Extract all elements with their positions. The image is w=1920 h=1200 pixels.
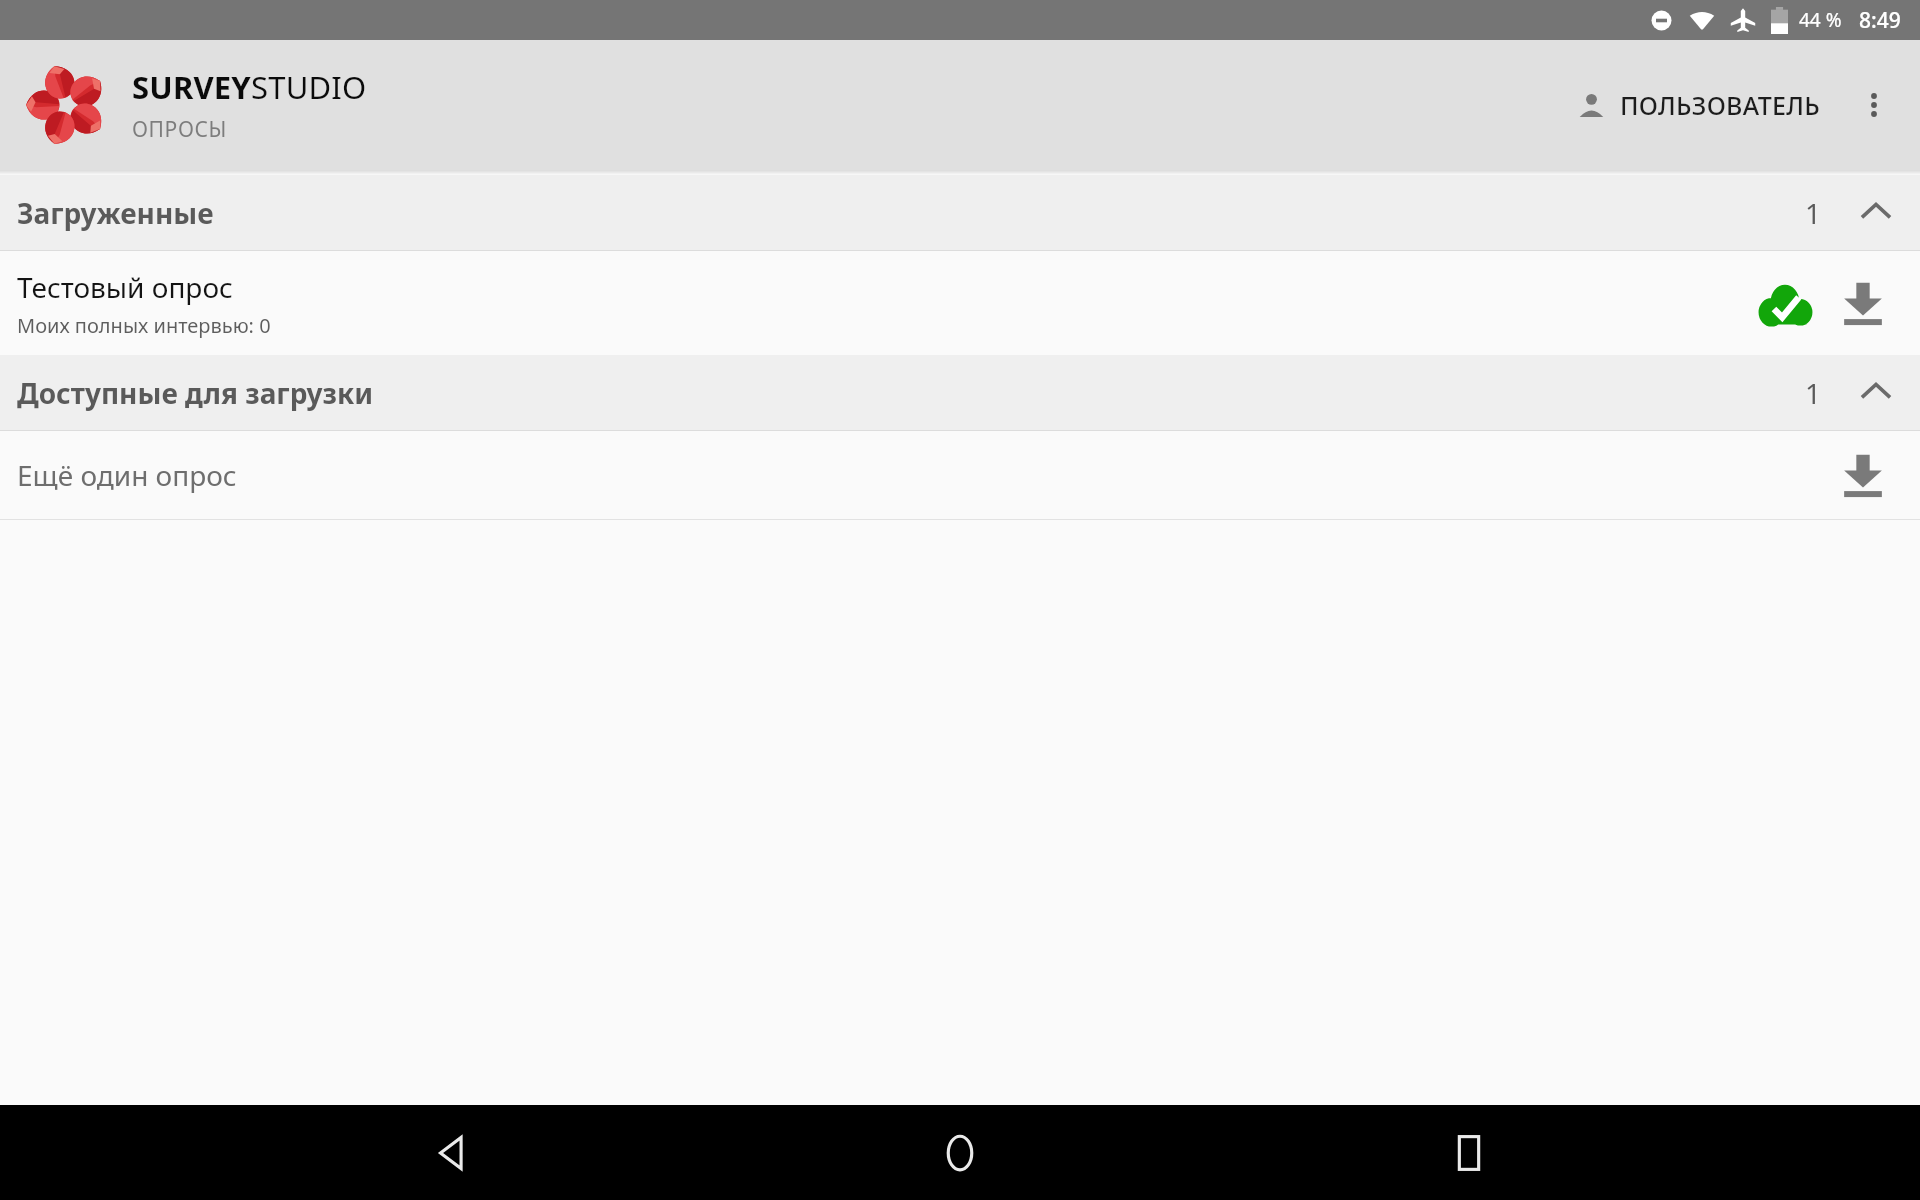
button[interactable]: Back — [409, 1111, 493, 1195]
staticText: ОПРОСЫ — [132, 115, 227, 144]
button[interactable]: Доступные для загрузки — [0, 355, 1920, 431]
staticText: ПОЛЬЗОВАТЕЛЬ — [1620, 88, 1820, 122]
button[interactable]: Download — [1826, 266, 1900, 340]
staticText: Моих полных интервью: 0 — [17, 312, 271, 339]
button[interactable]: Загруженные — [0, 175, 1920, 251]
staticText: STUDIO — [251, 66, 367, 108]
staticText: Тестовый опрос — [17, 268, 233, 306]
button[interactable]: More options — [1844, 75, 1904, 135]
button[interactable]: Synced to cloud — [1748, 266, 1822, 340]
staticText: Доступные для загрузки — [17, 374, 374, 412]
button[interactable]: ПОЛЬЗОВАТЕЛЬ — [1568, 74, 1828, 136]
staticText: Ещё один опрос — [17, 456, 237, 494]
button[interactable]: Recent apps — [1427, 1111, 1511, 1195]
staticText: 44 % — [1799, 7, 1842, 33]
staticText: Загруженные — [17, 194, 214, 232]
staticText: 1 — [1805, 374, 1822, 412]
staticText: SURVEY — [132, 66, 251, 108]
staticText: 1 — [1805, 194, 1822, 232]
button[interactable]: Home — [918, 1111, 1002, 1195]
button[interactable]: Ещё один опрос — [0, 431, 1920, 519]
staticText: 8:49 — [1859, 6, 1901, 35]
button[interactable]: Download — [1826, 438, 1900, 512]
button[interactable]: Тестовый опрос — [0, 251, 1920, 355]
